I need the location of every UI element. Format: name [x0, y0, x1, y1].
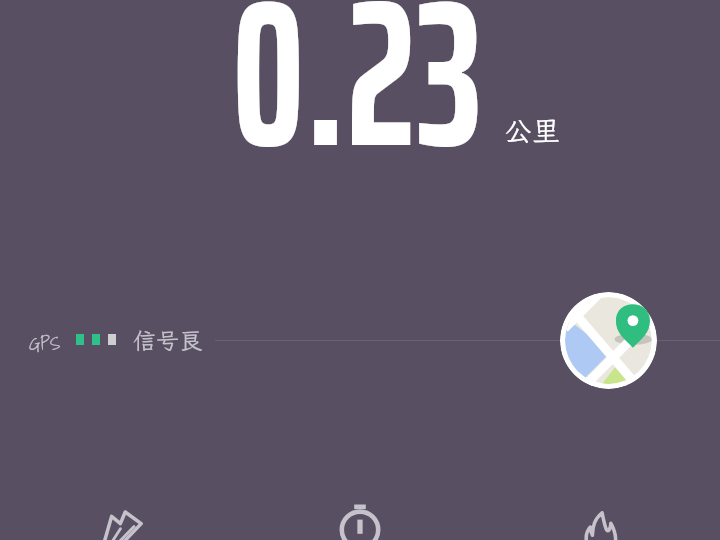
button[interactable]: Pace [102, 508, 142, 540]
staticText: 信号良 [133, 325, 202, 355]
staticText: 0.23 [232, 0, 484, 236]
staticText: GPS [29, 328, 61, 359]
button[interactable]: Duration [340, 502, 380, 540]
staticText: 公里 [504, 112, 561, 149]
button[interactable]: Calories [581, 508, 619, 540]
button[interactable]: Map [560, 292, 657, 389]
